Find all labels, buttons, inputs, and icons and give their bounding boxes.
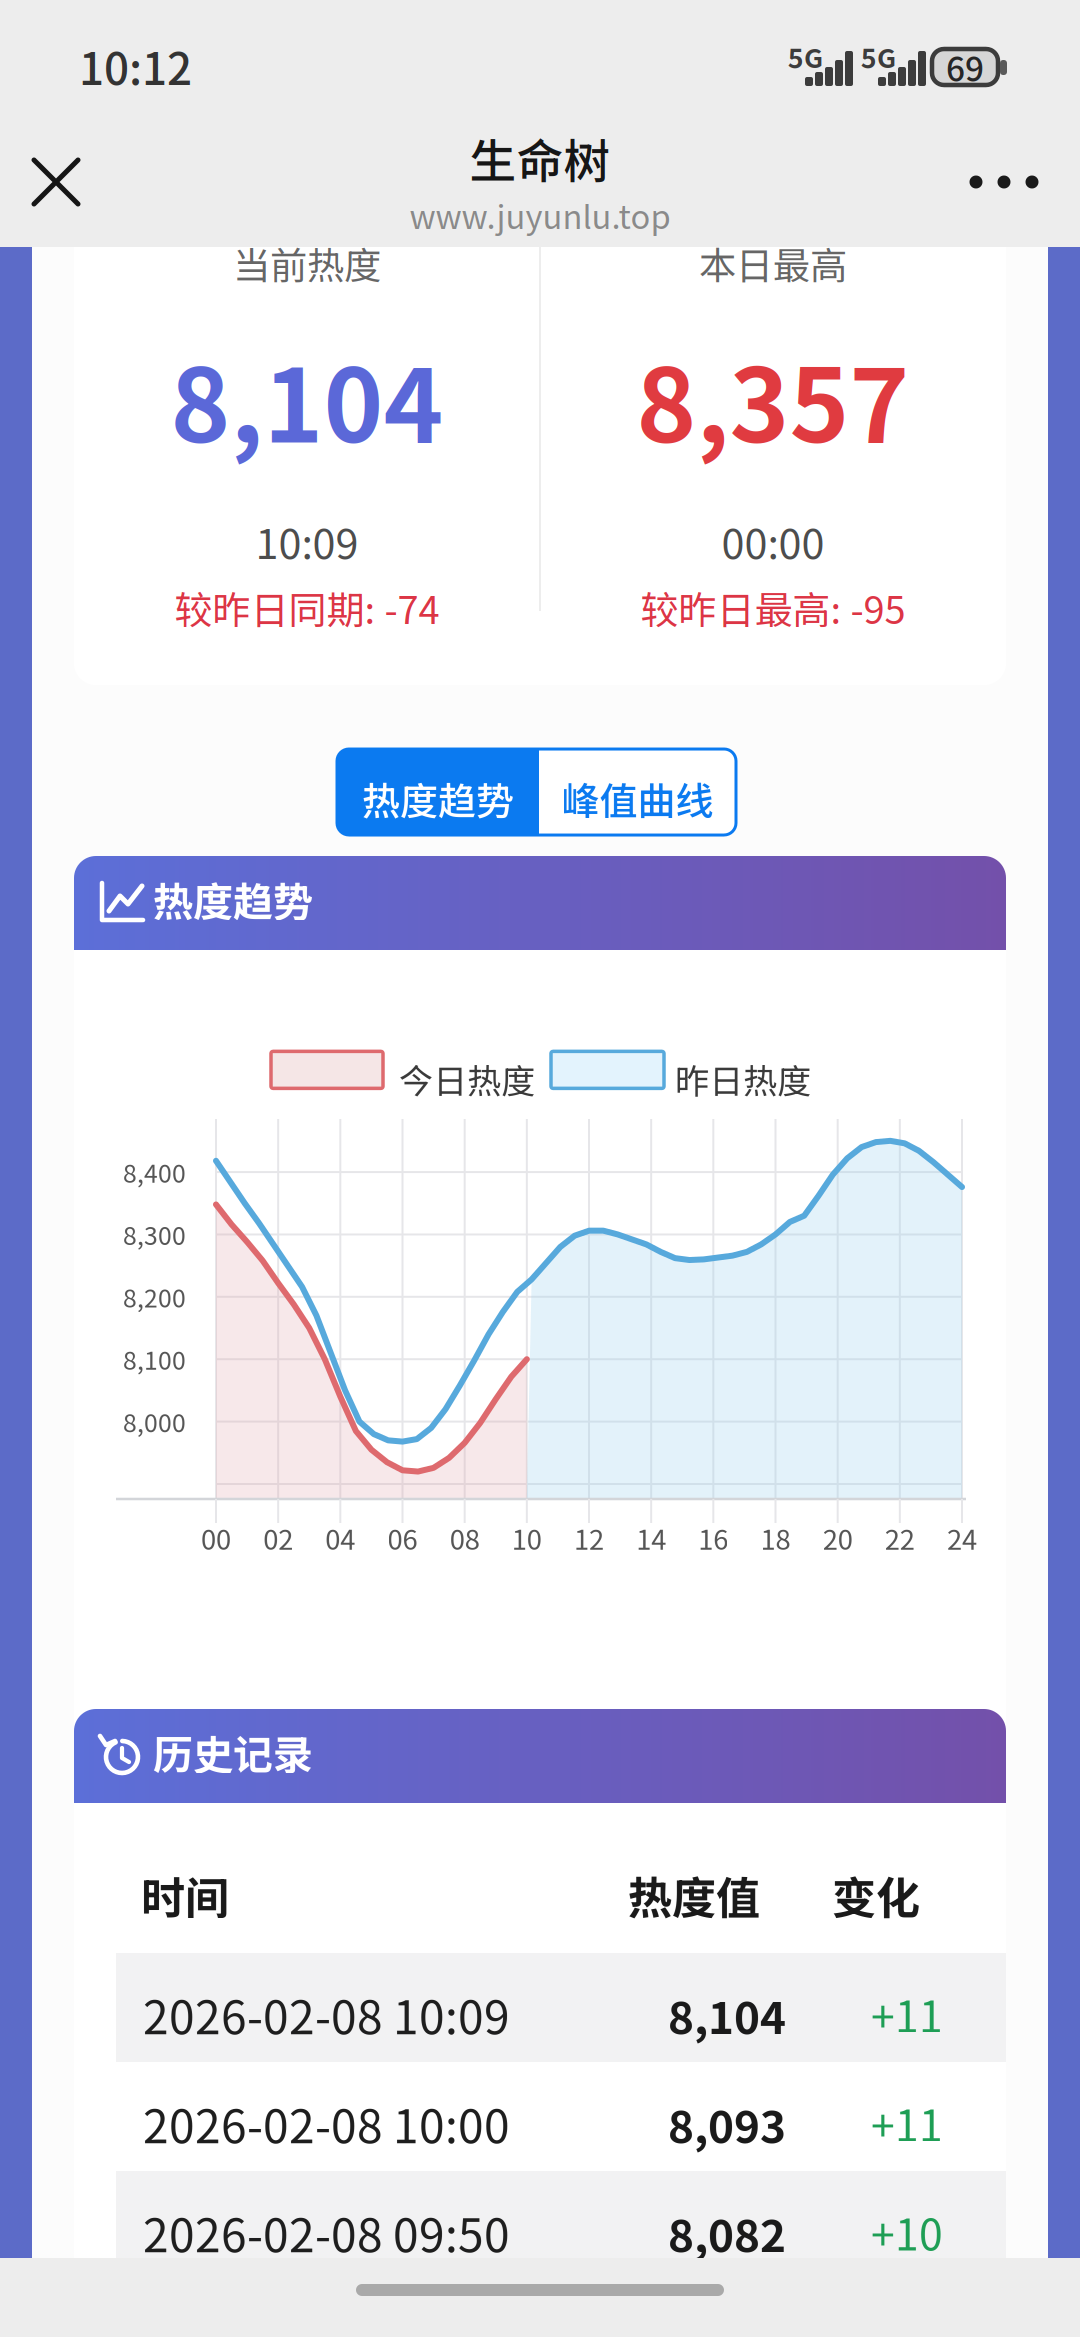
staticText: 较昨日最高: -95	[640, 580, 905, 635]
staticText: 历史记录	[153, 1723, 313, 1781]
staticText: 18	[760, 1518, 790, 1558]
staticText: 5G	[788, 37, 823, 76]
staticText: 10	[512, 1518, 542, 1558]
staticText: 当前热度	[233, 236, 381, 290]
staticText: 02	[263, 1518, 293, 1558]
button[interactable]: Close	[0, 126, 112, 238]
staticText: +11	[871, 2092, 943, 2154]
staticText: 生命树	[469, 124, 610, 192]
staticText: 10:12	[79, 34, 192, 98]
staticText: 8,300	[123, 1216, 186, 1252]
staticText: 8,100	[123, 1341, 186, 1377]
staticText: 8,400	[123, 1154, 186, 1190]
button[interactable]: More options	[948, 126, 1060, 238]
staticText: 04	[325, 1518, 355, 1558]
staticText: 较昨日同期: -74	[174, 580, 439, 635]
staticText: 8,104	[668, 1983, 786, 2047]
staticText: 8,093	[668, 2092, 786, 2156]
staticText: 14	[636, 1518, 666, 1558]
staticText: 8,000	[123, 1404, 186, 1439]
staticText: 8,104	[170, 325, 443, 472]
staticText: 16	[698, 1518, 728, 1558]
staticText: 昨日热度	[675, 1054, 811, 1104]
staticText: www.juyunlu.top	[409, 191, 670, 238]
staticText: +10	[871, 2201, 943, 2263]
staticText: 热度值	[628, 1863, 760, 1927]
staticText: 24	[947, 1518, 977, 1558]
staticText: 本日最高	[699, 236, 847, 290]
staticText: 06	[387, 1518, 417, 1558]
staticText: +11	[871, 1983, 943, 2045]
staticText: 8,200	[123, 1279, 186, 1314]
staticText: 时间	[141, 1863, 229, 1927]
staticText: 08	[450, 1518, 480, 1558]
staticText: 8,082	[668, 2201, 786, 2265]
staticText: 00	[201, 1518, 231, 1558]
button[interactable]: 峰值曲线	[539, 749, 736, 835]
staticText: 峰值曲线	[561, 771, 713, 826]
staticText: 20	[823, 1518, 853, 1558]
button[interactable]: 热度趋势	[337, 749, 539, 835]
staticText: 2026-02-08 09:50	[143, 2199, 510, 2266]
staticText: 今日热度	[399, 1054, 535, 1104]
staticText: 8,357	[636, 325, 909, 472]
staticText: 12	[574, 1518, 604, 1558]
staticText: 22	[885, 1518, 915, 1558]
staticText: 10:09	[255, 511, 358, 571]
staticText: 变化	[832, 1863, 920, 1927]
staticText: 2026-02-08 10:09	[143, 1981, 510, 2048]
staticText: 热度趋势	[153, 870, 313, 928]
staticText: 热度趋势	[362, 771, 514, 826]
staticText: 69	[946, 43, 984, 91]
staticText: 00:00	[721, 511, 824, 571]
staticText: 5G	[861, 37, 896, 76]
staticText: 2026-02-08 10:00	[143, 2090, 510, 2157]
